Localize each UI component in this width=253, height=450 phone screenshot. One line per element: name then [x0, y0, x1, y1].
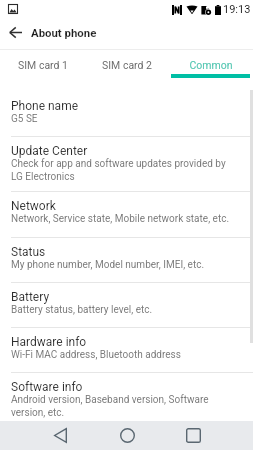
staticText: Check for app and software updates provi…: [11, 158, 226, 183]
staticText: Status: [11, 245, 46, 259]
staticText: Wi-Fi MAC address, Bluetooth address: [11, 349, 181, 361]
staticText: Phone name: [11, 99, 79, 113]
staticText: Hardware info: [11, 335, 87, 349]
button[interactable]: Home: [112, 421, 142, 450]
staticText: Battery status, battery level, etc.: [11, 304, 153, 316]
staticText: About phone: [31, 26, 97, 39]
button[interactable]: Update Center: [0, 137, 253, 192]
button[interactable]: Phone name: [0, 92, 253, 137]
button[interactable]: Software info: [0, 373, 253, 421]
staticText: SIM card 2: [102, 59, 152, 71]
staticText: Network, Service state, Mobile network s…: [11, 213, 230, 225]
button[interactable]: Back: [45, 421, 75, 450]
button[interactable]: Hardware info: [0, 328, 253, 373]
button[interactable]: Battery: [0, 283, 253, 328]
staticText: Software info: [11, 380, 83, 394]
staticText: Battery: [11, 290, 50, 304]
staticText: Update Center: [11, 144, 88, 158]
staticText: SIM card 1: [18, 59, 68, 71]
staticText: Network: [11, 199, 56, 213]
staticText: G5 SE: [11, 113, 38, 125]
staticText: Android version, Baseband version, Softw…: [11, 394, 209, 419]
staticText: Common: [189, 59, 233, 71]
button[interactable]: Status: [0, 238, 253, 283]
staticText: My phone number, Model number, IMEI, etc…: [11, 259, 205, 271]
button[interactable]: Network: [0, 192, 253, 238]
button[interactable]: Recent apps: [179, 421, 209, 450]
button[interactable]: Navigate up: [0, 18, 31, 49]
button[interactable]: Common: [169, 55, 253, 74]
button[interactable]: SIM card 1: [0, 55, 85, 74]
button[interactable]: SIM card 2: [85, 55, 169, 74]
staticText: 19:13: [223, 3, 251, 16]
